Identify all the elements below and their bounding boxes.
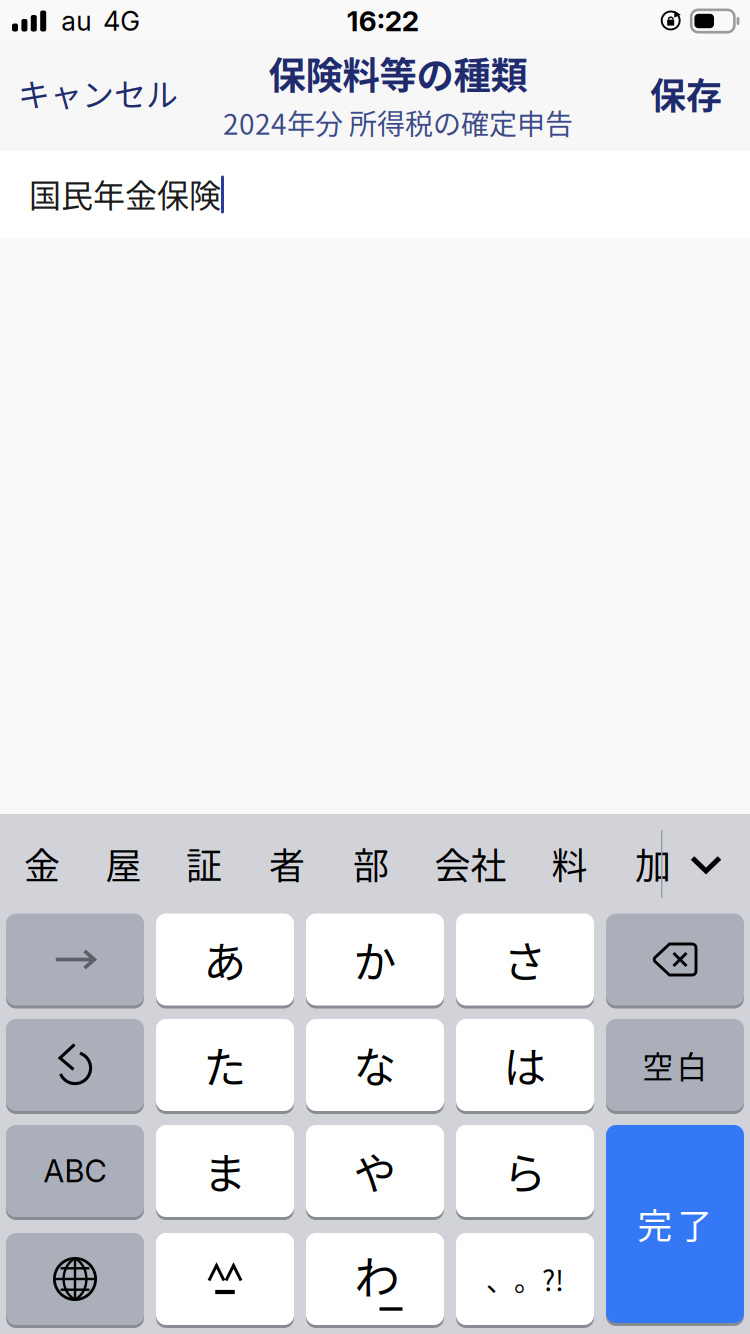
staticText: か <box>353 929 396 990</box>
button[interactable]: ABC <box>6 1123 144 1218</box>
staticText: 空白 <box>642 1043 707 1087</box>
button[interactable]: あ <box>156 912 294 1007</box>
button[interactable]: 完了 <box>606 1123 744 1324</box>
button[interactable]: 次候補 <box>6 912 144 1007</box>
button[interactable]: 取り消し <box>6 1017 144 1112</box>
staticText: さ <box>503 929 546 990</box>
button[interactable]: や <box>306 1123 444 1218</box>
staticText: 屋 <box>105 837 141 889</box>
staticText: 料 <box>551 837 587 889</box>
staticText: 国民年金保険 <box>29 170 221 217</box>
staticText: 2024年分 所得税の確定申告 <box>223 102 573 143</box>
button[interactable]: 金 <box>0 814 84 913</box>
staticText: ら <box>503 1140 546 1202</box>
staticText: あ <box>203 929 246 990</box>
button[interactable]: 空白 <box>606 1017 744 1112</box>
button[interactable]: キーボードを閉じる <box>662 815 750 914</box>
button[interactable]: か <box>306 912 444 1007</box>
staticText: 部 <box>353 837 389 889</box>
staticText: 者 <box>269 837 305 889</box>
button[interactable]: 料 <box>528 814 611 913</box>
button[interactable]: わ <box>306 1231 444 1326</box>
staticText: 証 <box>186 837 222 889</box>
staticText: 完了 <box>637 1199 712 1249</box>
staticText: au <box>61 5 91 37</box>
staticText: や <box>353 1140 396 1202</box>
button[interactable]: 屋 <box>84 814 163 913</box>
button[interactable]: 部 <box>329 814 413 913</box>
staticText: な <box>353 1034 396 1096</box>
button[interactable]: 削除 <box>606 912 744 1007</box>
button[interactable]: 、。?! <box>456 1231 594 1326</box>
staticText: 、。?! <box>486 1259 564 1299</box>
button[interactable]: 加 <box>611 814 695 913</box>
button[interactable]: キャンセル <box>0 42 192 151</box>
button[interactable]: な <box>306 1017 444 1112</box>
button[interactable]: は <box>456 1017 594 1112</box>
staticText: 会社 <box>434 837 506 889</box>
button[interactable]: ま <box>156 1123 294 1218</box>
staticText: キャンセル <box>18 69 178 116</box>
staticText: た <box>203 1034 246 1096</box>
button[interactable]: 証 <box>163 814 245 913</box>
button[interactable]: 言語切り替え <box>6 1231 144 1326</box>
button[interactable]: 保存 <box>636 42 750 151</box>
staticText: 加 <box>635 837 671 889</box>
staticText: 4G <box>103 5 140 37</box>
staticText: わ <box>354 1242 399 1308</box>
staticText: 16:22 <box>347 4 419 38</box>
button[interactable]: 会社 <box>413 814 528 913</box>
button[interactable]: ら <box>456 1123 594 1218</box>
staticText: 金 <box>24 837 60 889</box>
staticText: 保存 <box>650 67 722 119</box>
staticText: ま <box>203 1140 246 1202</box>
staticText: 保険料等の種類 <box>268 46 527 100</box>
button[interactable]: 者 <box>245 814 329 913</box>
button[interactable] <box>156 1231 294 1326</box>
staticText: ABC <box>43 1152 106 1189</box>
staticText: は <box>503 1034 546 1096</box>
button[interactable]: さ <box>456 912 594 1007</box>
button[interactable]: た <box>156 1017 294 1112</box>
